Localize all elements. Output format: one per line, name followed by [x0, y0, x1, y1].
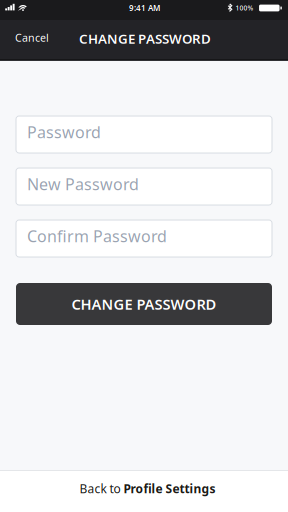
staticText: 9:41 AM — [129, 3, 160, 13]
staticText: New Password — [27, 173, 139, 195]
staticText: CHANGE PASSWORD — [71, 294, 216, 314]
staticText: Cancel — [15, 30, 49, 45]
staticText: Back to Profile Settings — [79, 480, 215, 496]
staticText: Password — [27, 121, 101, 143]
button[interactable]: Cancel — [0, 20, 57, 59]
staticText: Confirm Password — [27, 225, 167, 247]
button[interactable]: Back to Profile Settings — [0, 471, 288, 512]
button[interactable]: New Password — [16, 168, 272, 205]
staticText: CHANGE PASSWORD — [79, 30, 211, 47]
button[interactable]: CHANGE PASSWORD — [16, 283, 272, 325]
staticText: 100% — [235, 4, 253, 12]
button[interactable]: Password — [16, 116, 272, 153]
button[interactable]: Confirm Password — [16, 220, 272, 257]
